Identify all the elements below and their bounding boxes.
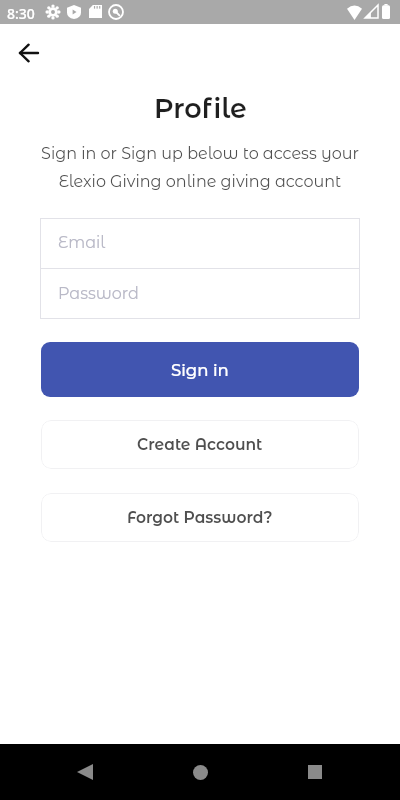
button[interactable] <box>69 756 101 788</box>
button[interactable]: Forgot Password? <box>41 493 359 542</box>
button[interactable] <box>299 756 331 788</box>
staticText: Password <box>58 284 139 304</box>
button[interactable]: Create Account <box>41 420 359 469</box>
button[interactable] <box>184 756 216 788</box>
staticText: Email <box>58 233 106 253</box>
button[interactable]: Password <box>40 269 360 319</box>
staticText: Forgot Password? <box>127 508 273 527</box>
staticText: Sign in or Sign up below to access your … <box>41 144 359 191</box>
button[interactable]: Sign in <box>41 342 359 397</box>
button[interactable] <box>12 36 46 70</box>
staticText: Profile <box>154 92 247 125</box>
staticText: Sign in <box>171 360 229 380</box>
staticText: Create Account <box>137 435 263 454</box>
staticText: 8:30 <box>7 4 35 23</box>
button[interactable]: Email <box>40 218 360 268</box>
